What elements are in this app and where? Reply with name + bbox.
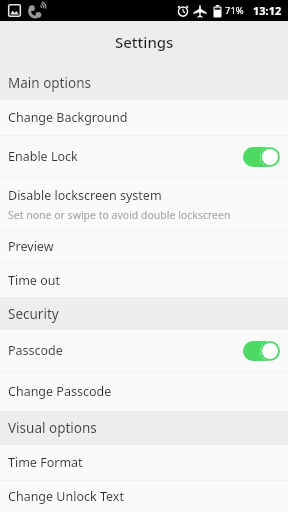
staticText: Time Format (8, 454, 83, 471)
staticText: 71% (225, 4, 244, 17)
staticText: Disable lockscreen system (8, 187, 162, 204)
staticText: Settings (115, 32, 174, 52)
staticText: Preview (8, 238, 54, 255)
button[interactable]: Passcode (0, 330, 288, 371)
staticText: Change Passcode (8, 383, 112, 400)
staticText: Set none or swipe to avoid double locksc… (8, 208, 231, 222)
staticText: Change Unlock Text (8, 488, 124, 505)
staticText: 13:12 (253, 3, 282, 18)
button[interactable]: Change Passcode (0, 372, 288, 411)
staticText: Main options (8, 74, 91, 92)
button[interactable]: Change Unlock Text (0, 481, 288, 512)
staticText: Enable Lock (8, 148, 78, 165)
button[interactable] (243, 341, 280, 361)
button[interactable] (243, 147, 280, 167)
staticText: Passcode (8, 342, 63, 359)
button[interactable]: Change Background (0, 100, 288, 135)
staticText: Security (8, 305, 59, 323)
button[interactable]: Enable Lock (0, 136, 288, 177)
button[interactable]: Time out (0, 263, 288, 297)
button[interactable]: Disable lockscreen system (0, 178, 288, 230)
staticText: Visual options (8, 419, 97, 437)
button[interactable]: Time Format (0, 445, 288, 480)
staticText: Change Background (8, 109, 128, 126)
button[interactable]: Preview (0, 231, 288, 262)
staticText: Time out (8, 272, 60, 289)
